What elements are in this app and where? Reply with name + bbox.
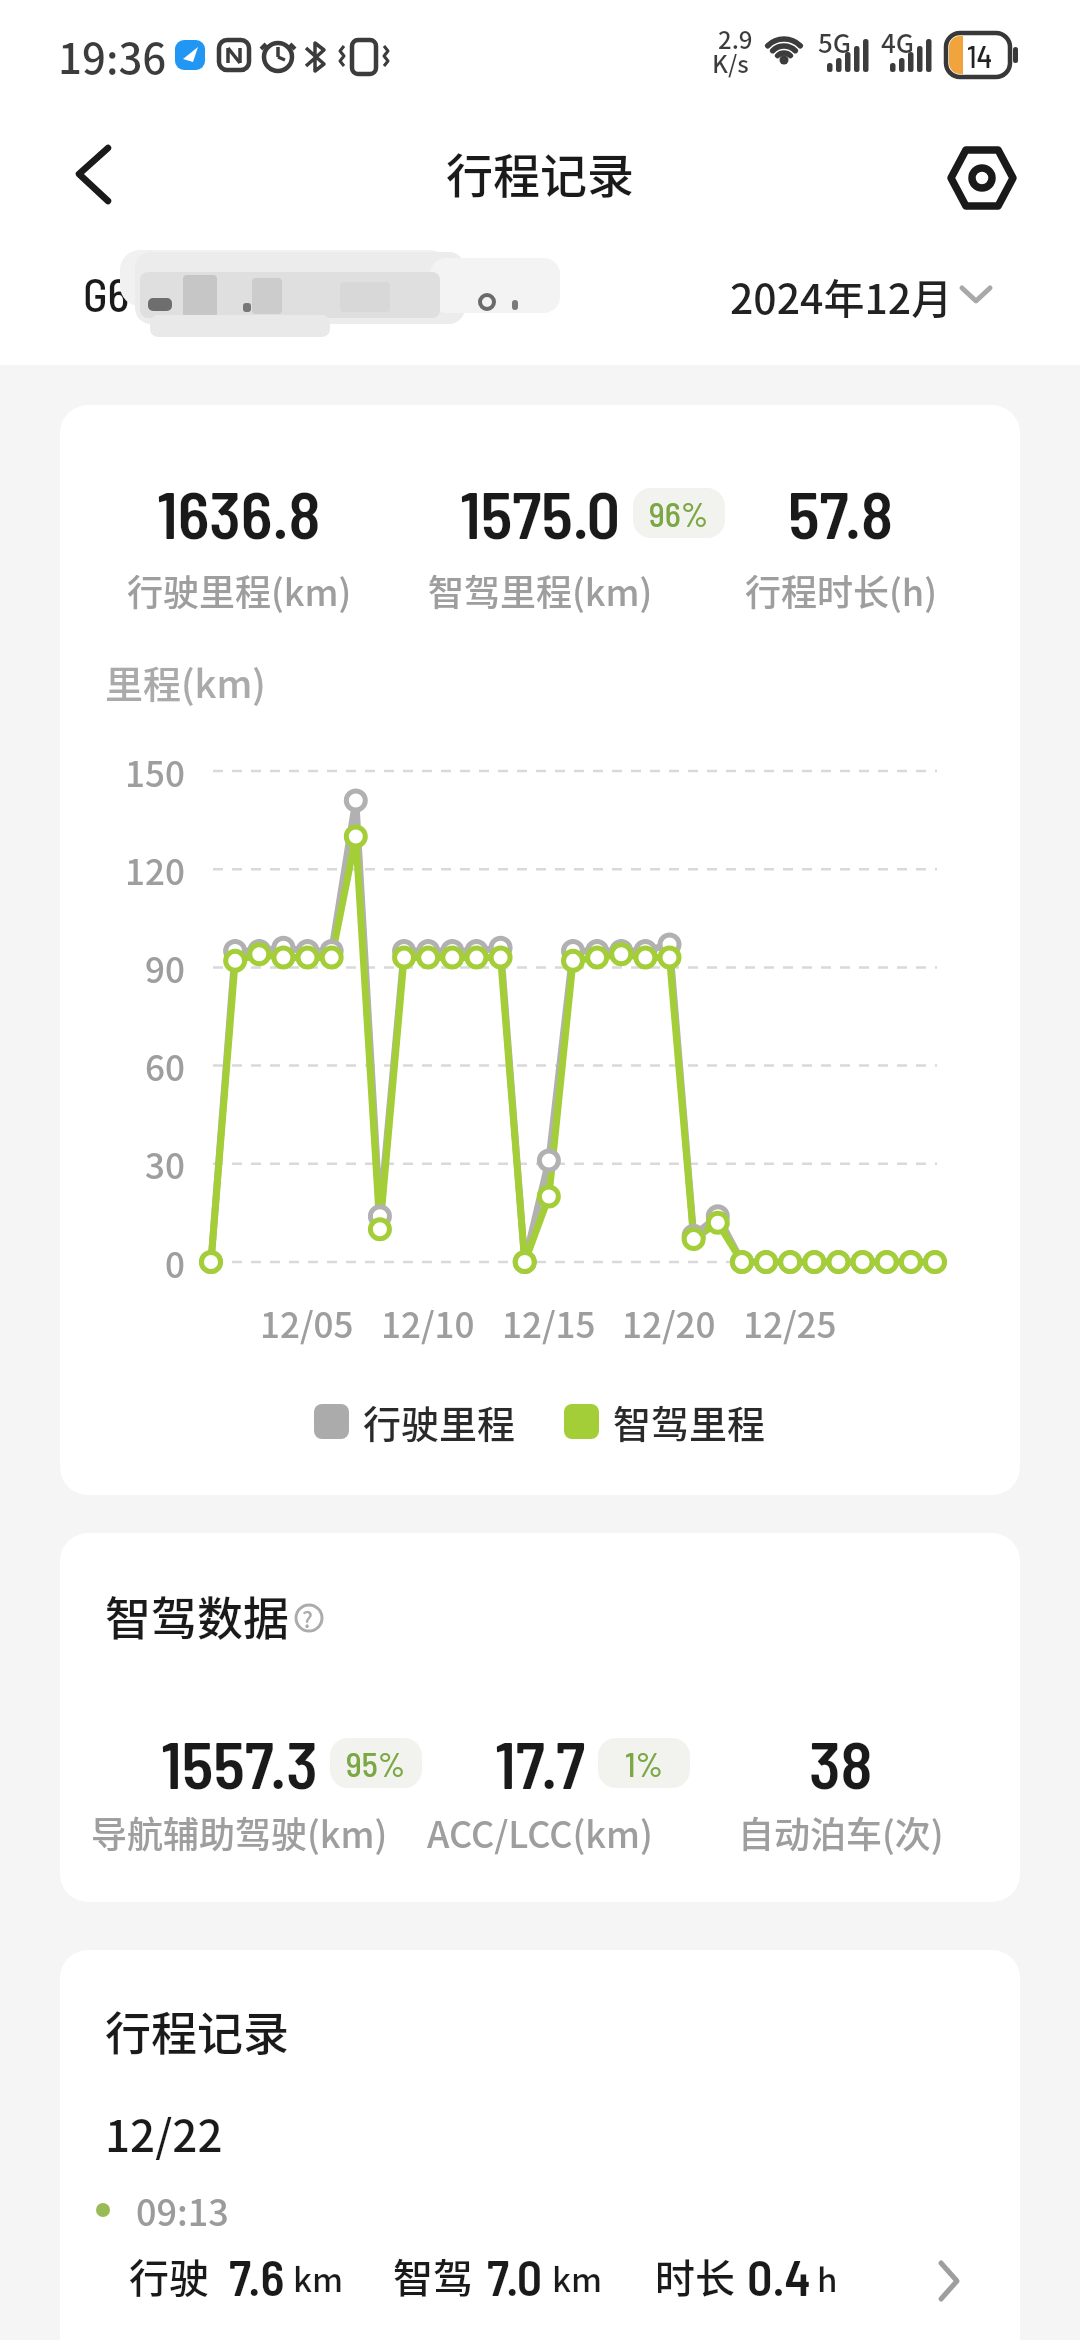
staticText: ACC/LCC(km) xyxy=(427,1806,653,1858)
staticText: 90 xyxy=(145,942,185,993)
staticText: K/s xyxy=(712,45,749,80)
staticText: 7.6 xyxy=(229,2246,285,2306)
staticText: 1% xyxy=(625,1743,663,1784)
button[interactable]: 行驶 xyxy=(60,2246,1020,2316)
staticText: 12/20 xyxy=(622,1297,716,1348)
staticText: 导航辅助驾驶(km) xyxy=(91,1806,388,1858)
staticText: 60 xyxy=(145,1040,185,1091)
staticText: 行驶里程 xyxy=(363,1394,516,1449)
staticText: 12/22 xyxy=(105,2101,223,2165)
staticText: 0.4 xyxy=(747,2246,811,2306)
staticText: 14 xyxy=(967,37,993,74)
button[interactable]: 2024年12月 xyxy=(700,250,1020,340)
button[interactable] xyxy=(944,133,1020,209)
staticText: 96% xyxy=(649,493,709,534)
staticText: 95% xyxy=(346,1743,406,1784)
staticText: km xyxy=(552,2254,603,2302)
staticText: 智驾 xyxy=(393,2247,473,2305)
staticText: 时长 xyxy=(655,2247,735,2305)
staticText: 1575.0 xyxy=(460,473,621,552)
staticText: 智驾里程 xyxy=(613,1394,766,1449)
staticText: 09:13 xyxy=(136,2184,229,2236)
button[interactable] xyxy=(295,1604,323,1632)
staticText: h xyxy=(817,2254,838,2302)
staticText: 12/05 xyxy=(260,1297,354,1348)
staticText: 里程(km) xyxy=(105,654,266,709)
staticText: 12/10 xyxy=(381,1297,475,1348)
staticText: 1557.3 xyxy=(161,1723,318,1802)
staticText: ? xyxy=(302,1602,313,1634)
staticText: 4G xyxy=(881,23,915,61)
staticText: 自动泊车(次) xyxy=(738,1806,944,1858)
staticText: G6 xyxy=(83,266,130,321)
staticText: 0 xyxy=(165,1237,185,1288)
staticText: 行程时长(h) xyxy=(745,564,937,616)
staticText: 行程记录 xyxy=(105,1997,289,2064)
staticText: 智驾里程(km) xyxy=(428,564,653,616)
staticText: 17.7 xyxy=(495,1723,586,1802)
staticText: 7.0 xyxy=(487,2246,543,2306)
staticText: 5G xyxy=(818,23,852,61)
staticText: 57.8 xyxy=(788,473,894,552)
staticText: 1636.8 xyxy=(157,473,321,552)
staticText: 19:36 xyxy=(58,25,167,86)
button[interactable] xyxy=(60,145,130,215)
staticText: 150 xyxy=(125,746,185,797)
staticText: 2.9 xyxy=(718,21,753,56)
staticText: 12/25 xyxy=(743,1297,837,1348)
staticText: 行驶 xyxy=(129,2247,209,2305)
staticText: 120 xyxy=(125,844,185,895)
staticText: 行程记录 xyxy=(446,138,634,206)
staticText: 智驾数据 xyxy=(105,1582,289,1649)
staticText: 2024年12月 xyxy=(730,266,953,325)
staticText: 38 xyxy=(809,1723,873,1802)
staticText: km xyxy=(293,2254,344,2302)
staticText: 行驶里程(km) xyxy=(127,564,352,616)
staticText: 30 xyxy=(145,1138,185,1189)
staticText: 12/15 xyxy=(502,1297,596,1348)
